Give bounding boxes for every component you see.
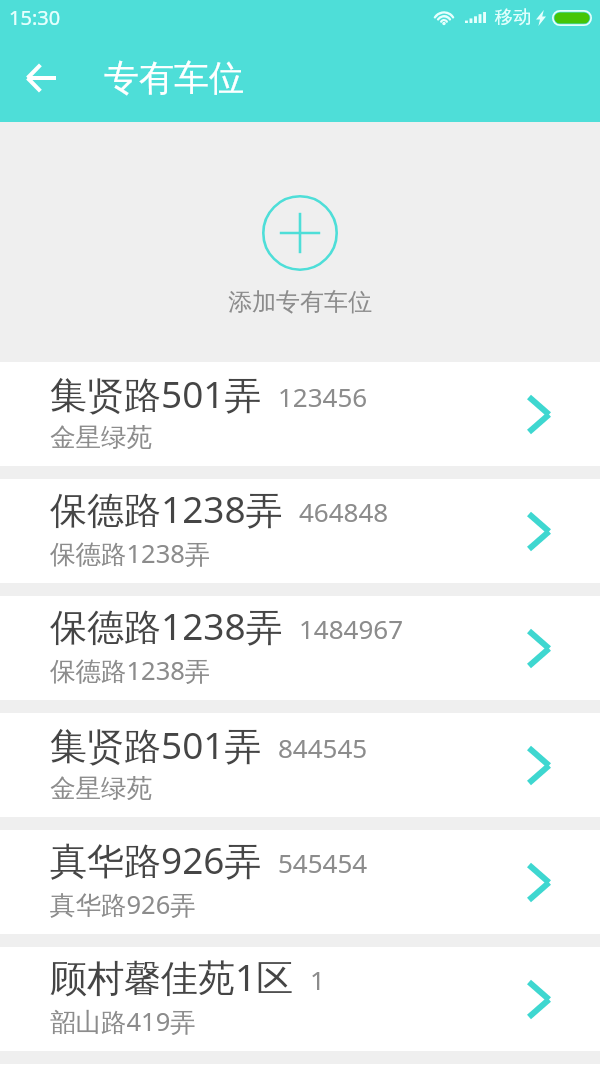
other: Open details <box>526 511 552 552</box>
staticText: 123456 <box>278 379 368 414</box>
other: Open details <box>526 394 552 435</box>
staticText: 添加专有车位 <box>228 287 372 317</box>
staticText: 金星绿苑 <box>50 772 152 804</box>
staticText: 545454 <box>278 845 368 880</box>
button[interactable]: 保德路1238弄 <box>0 479 600 583</box>
staticText: 844545 <box>278 730 368 765</box>
staticText: 真华路926弄 <box>50 834 262 885</box>
staticText: 保德路1238弄 <box>50 653 211 688</box>
staticText: 保德路1238弄 <box>50 600 283 651</box>
staticText: 顾村馨佳苑1区 <box>50 951 294 1002</box>
staticText: 保德路1238弄 <box>50 483 283 534</box>
other: Open details <box>526 628 552 669</box>
staticText: 集贤路501弄 <box>50 368 262 419</box>
staticText: 15:30 <box>9 4 61 31</box>
staticText: 1 <box>310 962 325 997</box>
other: Open details <box>526 745 552 786</box>
staticText: 保德路1238弄 <box>50 536 211 571</box>
button[interactable]: 添加专有车位 <box>0 122 600 361</box>
staticText: 韶山路419弄 <box>50 1004 196 1039</box>
other: Open details <box>526 862 552 903</box>
button[interactable]: 集贤路501弄 <box>0 362 600 466</box>
staticText: 专有车位 <box>104 56 244 100</box>
button[interactable]: 顾村馨佳苑1区 <box>0 947 600 1051</box>
staticText: 金星绿苑 <box>50 421 152 453</box>
staticText: 真华路926弄 <box>50 887 196 922</box>
staticText: 1484967 <box>299 611 404 646</box>
staticText: 移动 <box>495 6 531 29</box>
button[interactable]: 真华路926弄 <box>0 830 600 934</box>
button[interactable]: 保德路1238弄 <box>0 596 600 700</box>
button[interactable]: 集贤路501弄 <box>0 713 600 817</box>
staticText: 集贤路501弄 <box>50 719 262 770</box>
staticText: 464848 <box>299 494 389 529</box>
other: Open details <box>526 979 552 1020</box>
button[interactable]: Back <box>13 50 69 106</box>
